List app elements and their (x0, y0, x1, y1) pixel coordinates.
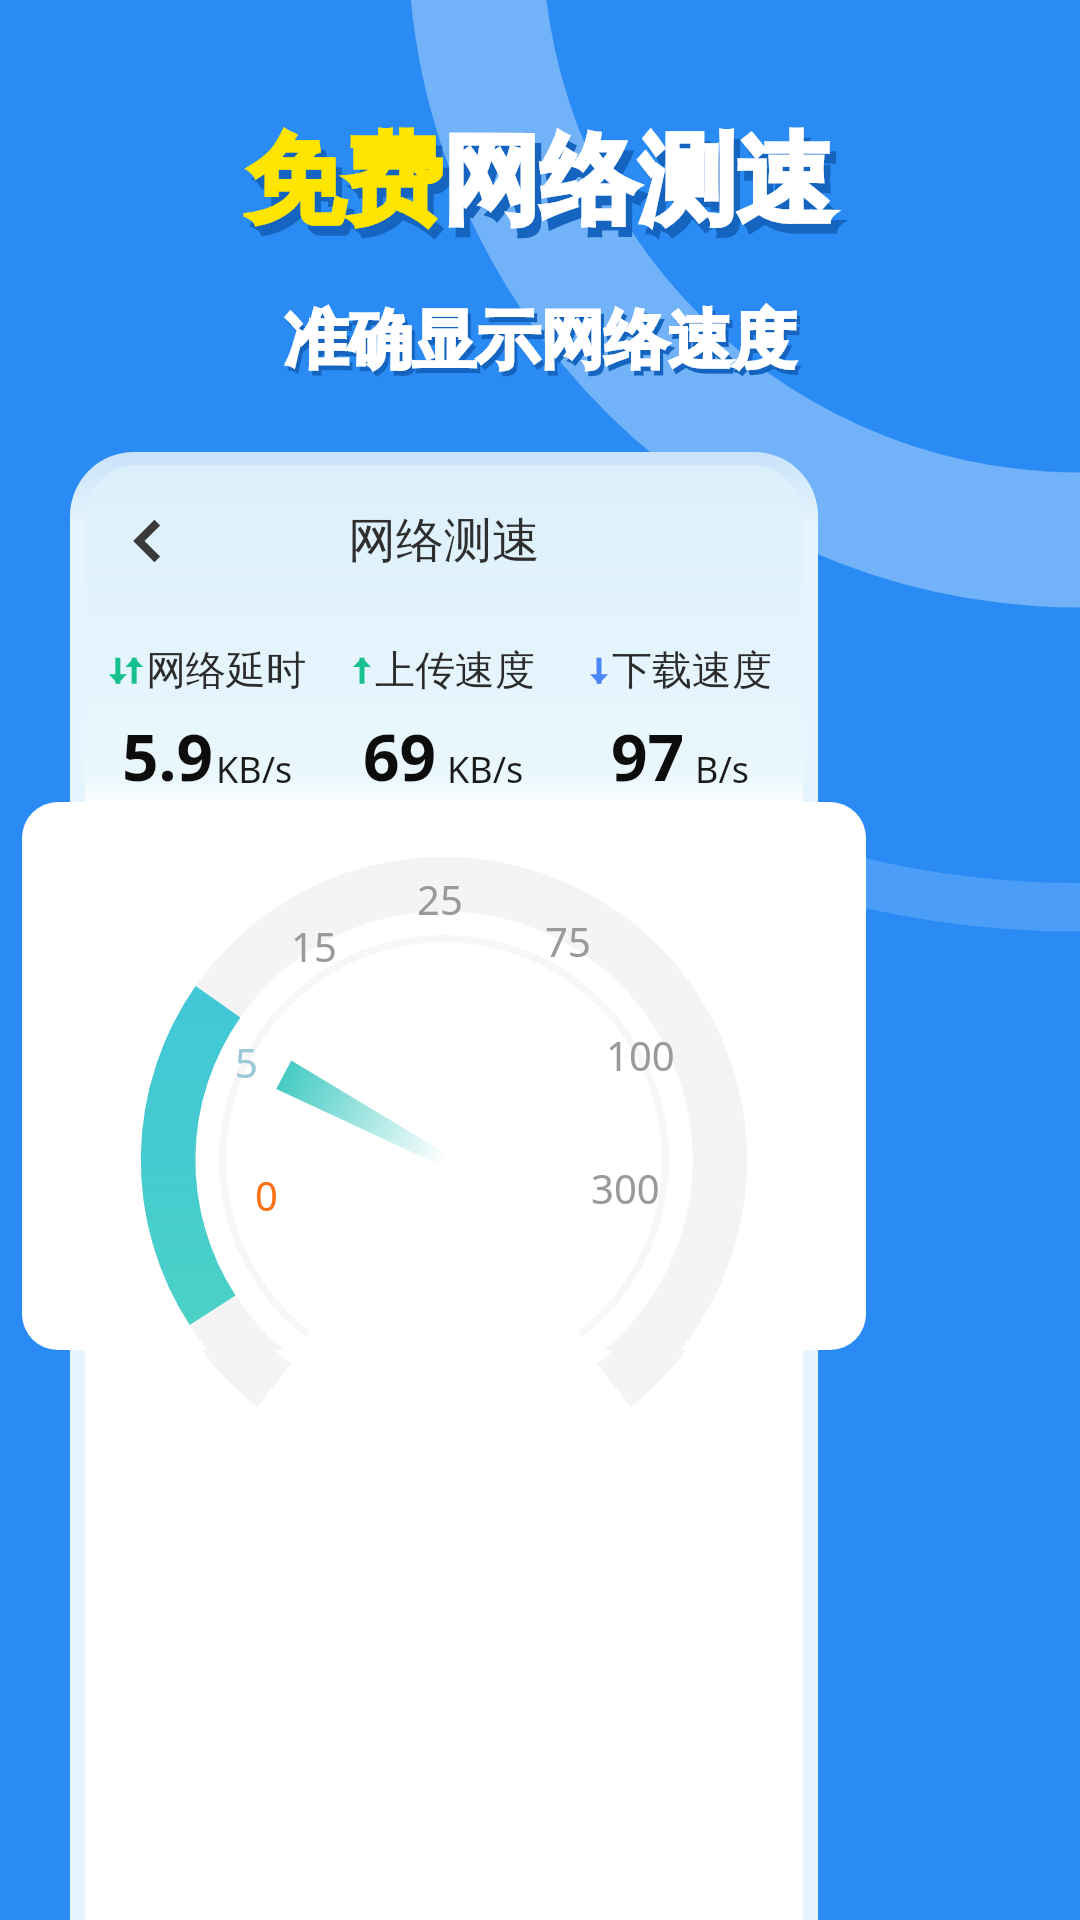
staticText: 准确显示网络速度 (284, 300, 796, 381)
staticText: 网络测速 (348, 511, 540, 571)
button[interactable]: 上传速度 (325, 645, 562, 800)
staticText: 300 (591, 1161, 660, 1215)
staticText: 25 (417, 872, 463, 926)
staticText: B/s (695, 745, 750, 794)
staticText: KB/s (447, 745, 524, 794)
staticText: KB/s (216, 745, 293, 794)
staticText: 上传速度 (375, 645, 535, 695)
staticText: 15 (291, 919, 337, 973)
staticText: 5 (235, 1035, 258, 1089)
button[interactable]: Back (111, 503, 187, 579)
staticText: 0 (255, 1168, 278, 1222)
staticText: 97 (611, 713, 685, 800)
staticText: 下载速度 (612, 645, 772, 695)
staticText: 免费 (246, 120, 442, 243)
staticText: 100 (606, 1028, 675, 1082)
button[interactable]: 网络延时 (89, 645, 325, 800)
staticText: 网络延时 (146, 645, 306, 695)
staticText: 75 (545, 914, 591, 968)
button[interactable]: 下载速度 (562, 645, 799, 800)
staticText: 5.9 (122, 713, 214, 800)
staticText: 网络测速 (442, 120, 834, 243)
staticText: 69 (363, 713, 437, 800)
